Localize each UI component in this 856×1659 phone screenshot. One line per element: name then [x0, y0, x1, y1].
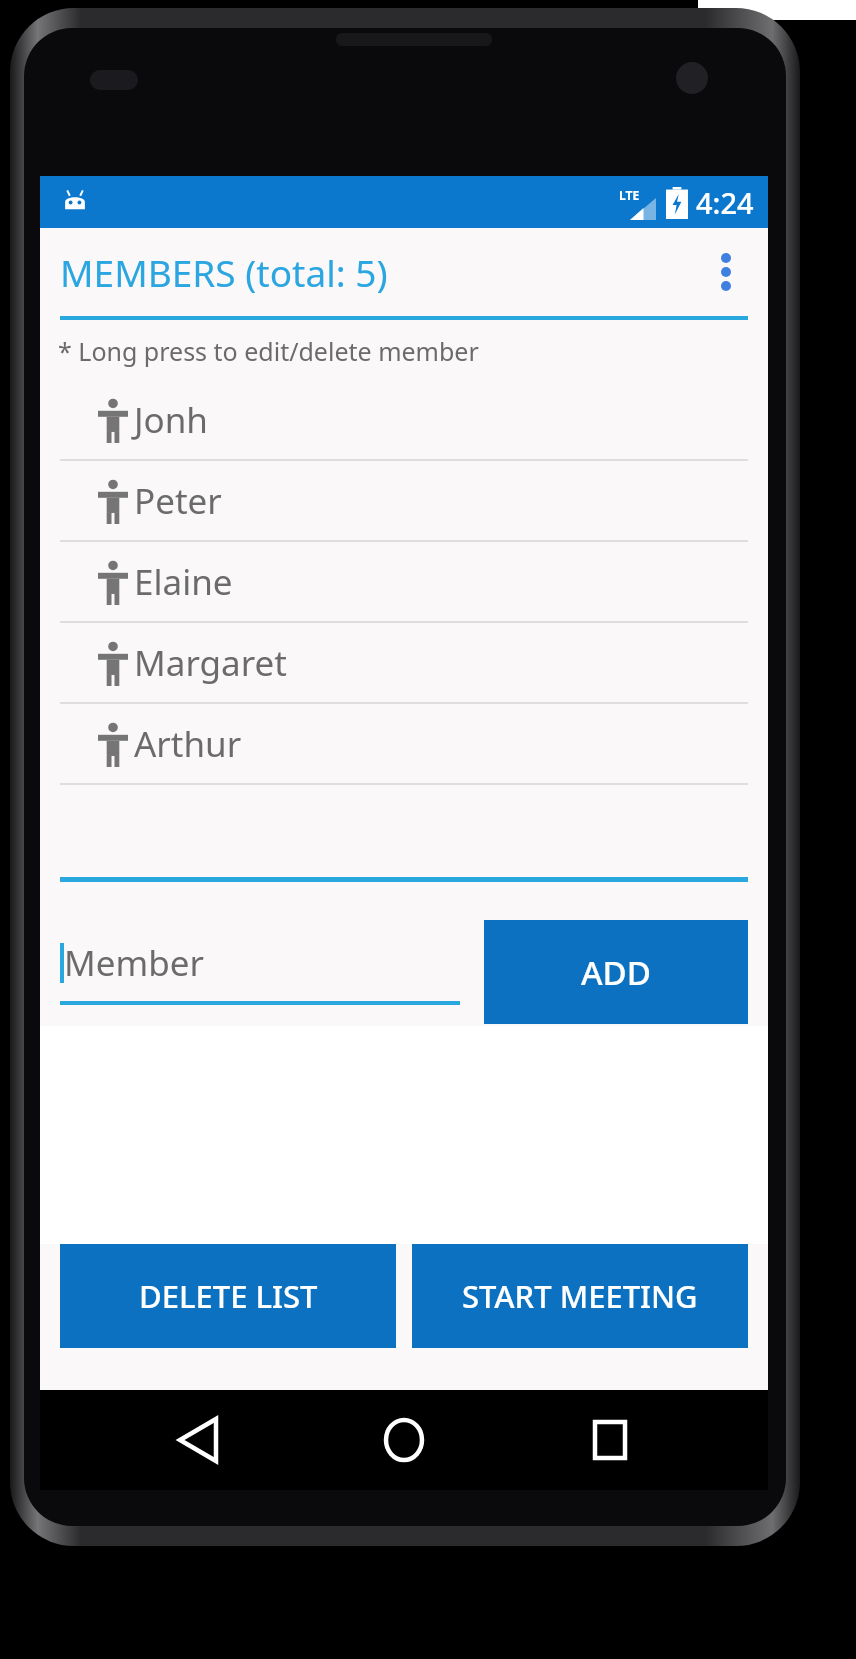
staticText: * Long press to edit/delete member	[58, 334, 479, 368]
button[interactable]: Jonh	[40, 380, 768, 459]
staticText: Peter	[134, 477, 222, 525]
button[interactable]: DELETE LIST	[60, 1244, 396, 1348]
staticText: LTE	[619, 187, 640, 203]
button[interactable]: Home	[356, 1392, 452, 1488]
staticText: START MEETING	[462, 1275, 698, 1317]
button[interactable]: Recent apps	[562, 1392, 658, 1488]
staticText: Member	[64, 939, 204, 987]
button[interactable]: Arthur	[40, 704, 768, 783]
button[interactable]: More options	[698, 244, 754, 300]
staticText: Margaret	[134, 639, 287, 687]
button[interactable]: Peter	[40, 461, 768, 540]
staticText: MEMBERS (total: 5)	[60, 247, 388, 297]
button[interactable]: START MEETING	[412, 1244, 748, 1348]
button[interactable]: Margaret	[40, 623, 768, 702]
button[interactable]: ADD	[484, 920, 748, 1024]
staticText: Arthur	[134, 720, 242, 768]
staticText: Jonh	[134, 396, 208, 444]
button[interactable]: Back	[150, 1392, 246, 1488]
staticText: ADD	[581, 950, 651, 995]
staticText: 4:24	[696, 183, 754, 222]
button[interactable]: Elaine	[40, 542, 768, 621]
staticText: DELETE LIST	[139, 1275, 318, 1317]
staticText: Elaine	[134, 558, 233, 606]
